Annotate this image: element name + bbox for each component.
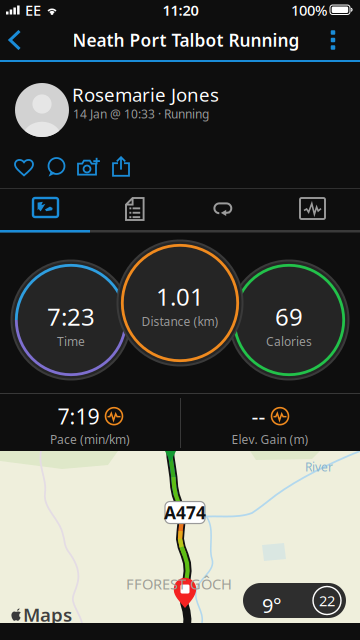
staticText: 11:20 [162, 0, 198, 20]
staticText: Maps [23, 602, 72, 627]
staticText: FFOREST GÔCH [126, 574, 232, 593]
button[interactable]: Share [105, 149, 137, 184]
button[interactable]: Charts [270, 190, 360, 231]
staticText: River [305, 459, 333, 475]
button[interactable]: More options [313, 20, 360, 60]
staticText: 100% [291, 0, 327, 20]
staticText: Neath Port Talbot Running [72, 28, 299, 51]
staticText: 1.01 [156, 281, 204, 312]
staticText: 7:19 [57, 402, 99, 430]
staticText: Time [57, 333, 85, 349]
staticText: 69 [275, 301, 303, 332]
button[interactable]: Comment [39, 150, 73, 184]
staticText: 7:23 [47, 301, 95, 332]
button[interactable]: Map [0, 190, 90, 230]
staticText: A474 [164, 501, 206, 524]
staticText: Pace (min/km) [50, 431, 130, 447]
staticText: 14 Jan @ 10:33 · Running [73, 106, 209, 122]
staticText: EE [25, 0, 41, 20]
button[interactable]: Add photo [70, 150, 107, 184]
button[interactable]: Back [0, 20, 38, 59]
button[interactable]: Like [7, 150, 41, 184]
staticText: -- [251, 402, 265, 430]
staticText: Calories [266, 333, 312, 349]
staticText: Rosemarie Jones [72, 82, 219, 107]
staticText: Elev. Gain (m) [231, 431, 308, 447]
staticText: 9° [262, 592, 282, 619]
button[interactable]: Details [90, 190, 180, 234]
button[interactable]: Laps [180, 190, 269, 230]
staticText: Distance (km) [141, 313, 218, 329]
staticText: 22 [319, 591, 335, 610]
